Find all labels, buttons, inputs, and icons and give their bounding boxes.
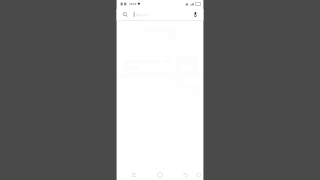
button[interactable]: Back xyxy=(180,169,191,180)
staticText: Search xyxy=(136,12,148,17)
button[interactable]: Search xyxy=(117,9,203,20)
button[interactable]: Hide keyboard xyxy=(194,170,203,180)
button[interactable]: Recent apps xyxy=(128,169,139,180)
button[interactable]: Home xyxy=(154,169,166,180)
